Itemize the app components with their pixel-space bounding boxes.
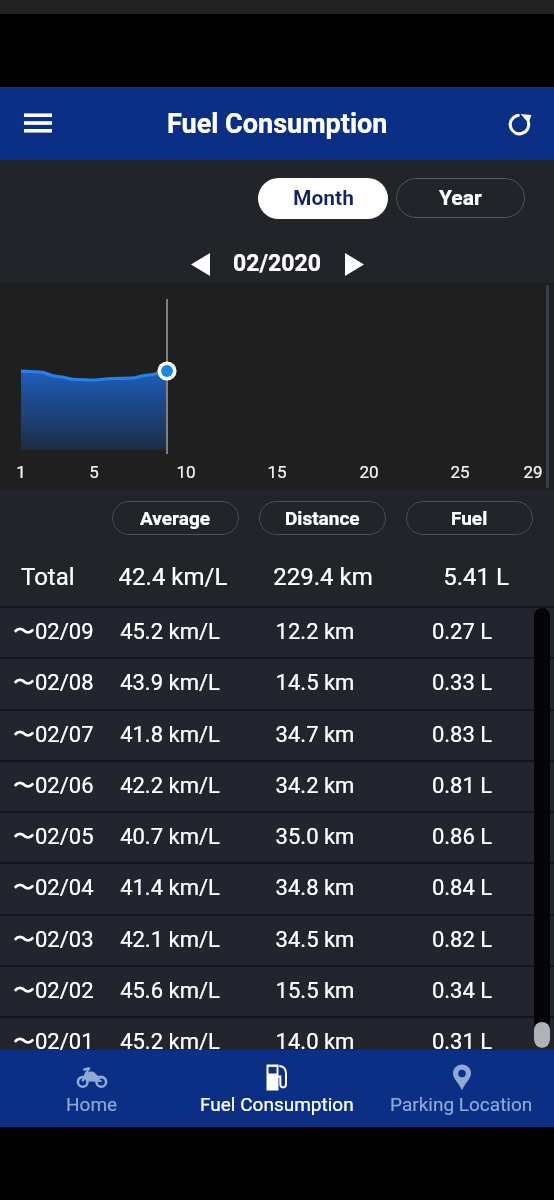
button[interactable]: Previous month — [180, 246, 220, 282]
staticText: 41.4 km/L — [100, 875, 240, 901]
staticText: 34.7 km — [245, 722, 385, 748]
staticText: 0.86 L — [392, 824, 532, 850]
staticText: 0.34 L — [392, 978, 532, 1004]
staticText: 〜02/09 — [13, 618, 94, 646]
button[interactable]: 〜02/06 — [0, 761, 554, 811]
button[interactable]: Menu — [14, 100, 62, 148]
staticText: 29 — [519, 462, 547, 482]
staticText: 15.5 km — [245, 978, 385, 1004]
staticText: 43.9 km/L — [100, 670, 240, 696]
staticText: 1 — [7, 462, 35, 482]
staticText: 34.8 km — [245, 875, 385, 901]
staticText: Year — [439, 186, 482, 211]
staticText: 35.0 km — [245, 824, 385, 850]
staticText: 〜02/01 — [13, 1028, 94, 1056]
staticText: 〜02/04 — [13, 874, 94, 902]
staticText: 14.5 km — [245, 670, 385, 696]
button[interactable]: Month — [258, 178, 388, 219]
button[interactable]: 〜02/09 — [0, 607, 554, 657]
staticText: 41.8 km/L — [100, 722, 240, 748]
button[interactable]: Parking Location — [369, 1050, 554, 1127]
staticText: 0.33 L — [392, 670, 532, 696]
button[interactable]: Average — [112, 501, 239, 535]
button[interactable]: 〜02/02 — [0, 966, 554, 1016]
staticText: 42.2 km/L — [100, 773, 240, 799]
staticText: 10 — [172, 462, 200, 482]
button[interactable]: 〜02/01 — [0, 1017, 554, 1067]
button[interactable]: Distance — [259, 501, 386, 535]
staticText: 02/2020 — [228, 250, 326, 277]
staticText: Fuel Consumption — [167, 108, 388, 140]
staticText: Distance — [285, 507, 360, 529]
button[interactable]: 〜02/05 — [0, 812, 554, 862]
staticText: 〜02/06 — [13, 772, 94, 800]
staticText: 40.7 km/L — [100, 824, 240, 850]
button[interactable]: Next month — [334, 246, 374, 282]
staticText: 〜02/03 — [13, 926, 94, 954]
staticText: 0.82 L — [392, 927, 532, 953]
staticText: 〜02/08 — [13, 669, 94, 697]
staticText: 0.83 L — [392, 722, 532, 748]
button[interactable]: Year — [396, 178, 525, 218]
staticText: 45.2 km/L — [100, 1029, 240, 1055]
staticText: Total — [21, 563, 75, 591]
staticText: Fuel Consumption — [200, 1093, 354, 1115]
staticText: 5 — [80, 462, 108, 482]
staticText: 34.5 km — [245, 927, 385, 953]
button[interactable]: Fuel Consumption — [184, 1050, 369, 1127]
staticText: 〜02/05 — [13, 823, 94, 851]
staticText: 14.0 km — [245, 1029, 385, 1055]
staticText: 0.81 L — [392, 773, 532, 799]
staticText: 〜02/02 — [13, 977, 94, 1005]
staticText: 12.2 km — [245, 619, 385, 645]
button[interactable]: 〜02/04 — [0, 863, 554, 913]
staticText: 0.84 L — [392, 875, 532, 901]
button[interactable]: 〜02/07 — [0, 710, 554, 760]
staticText: Average — [140, 507, 211, 529]
staticText: 5.41 L — [406, 563, 546, 591]
staticText: 45.2 km/L — [100, 619, 240, 645]
staticText: 0.27 L — [392, 619, 532, 645]
button[interactable]: Home — [0, 1050, 184, 1127]
staticText: Month — [293, 186, 354, 211]
button[interactable]: Refresh — [498, 102, 542, 146]
staticText: 45.6 km/L — [100, 978, 240, 1004]
button[interactable]: 〜02/08 — [0, 658, 554, 708]
staticText: 15 — [263, 462, 291, 482]
staticText: 20 — [355, 462, 383, 482]
staticText: 229.4 km — [253, 563, 393, 591]
button[interactable]: 〜02/03 — [0, 915, 554, 965]
staticText: Home — [66, 1093, 118, 1115]
button[interactable]: Fuel — [406, 501, 533, 535]
staticText: 34.2 km — [245, 773, 385, 799]
staticText: Parking Location — [390, 1093, 533, 1115]
staticText: 〜02/07 — [13, 721, 94, 749]
staticText: Fuel — [451, 507, 488, 529]
staticText: 0.31 L — [392, 1029, 532, 1055]
staticText: 25 — [446, 462, 474, 482]
staticText: 42.4 km/L — [103, 563, 243, 591]
staticText: 42.1 km/L — [100, 927, 240, 953]
